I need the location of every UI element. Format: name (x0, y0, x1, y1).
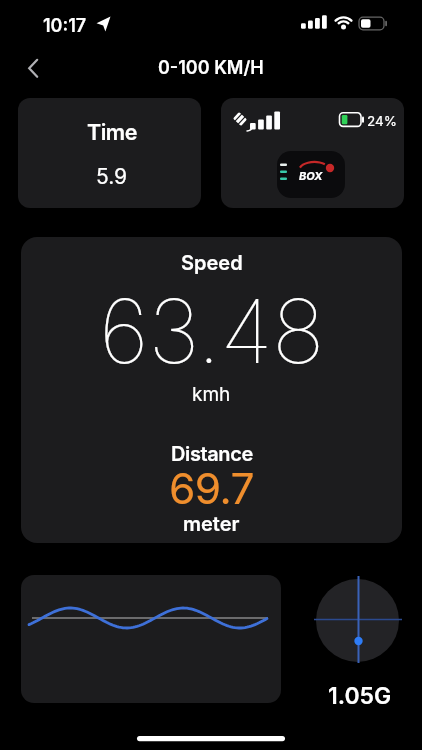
staticText: BOX (299, 169, 323, 182)
staticText: 24% (367, 113, 397, 129)
staticText: Distance (171, 442, 253, 466)
button[interactable] (18, 48, 58, 86)
staticText: 10:17 (43, 15, 87, 37)
staticText: meter (183, 512, 240, 536)
button[interactable] (221, 98, 404, 208)
staticText: 63.48 (99, 278, 325, 376)
staticText: 5.9 (96, 164, 128, 189)
button[interactable] (21, 575, 281, 703)
staticText: Time (87, 119, 137, 144)
button[interactable] (18, 98, 201, 208)
staticText: 69.7 (169, 463, 254, 507)
staticText: 0-100 KM/H (158, 57, 264, 79)
button[interactable] (21, 237, 402, 543)
staticText: Speed (181, 251, 243, 275)
staticText: 1.05G (328, 682, 392, 710)
button[interactable] (316, 579, 399, 662)
staticText: kmh (192, 383, 231, 406)
